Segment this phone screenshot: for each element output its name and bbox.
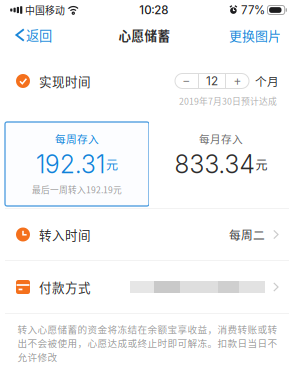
staticText: 中国移动 bbox=[25, 3, 65, 17]
staticText: 付款方式 bbox=[39, 278, 91, 296]
button[interactable]: 每月存入 bbox=[149, 122, 289, 206]
staticText: + bbox=[234, 73, 241, 89]
staticText: 10:28 bbox=[139, 3, 168, 17]
staticText: 833.34 bbox=[174, 149, 254, 179]
staticText: 192.31 bbox=[36, 149, 105, 179]
button[interactable]: 付款方式 bbox=[0, 261, 289, 313]
staticText: 2019年7月30日预计达成 bbox=[179, 95, 277, 107]
staticText: 返回 bbox=[26, 25, 52, 44]
staticText: 个月 bbox=[255, 72, 279, 89]
staticText: 元 bbox=[106, 156, 118, 173]
staticText: 转入时间 bbox=[39, 225, 91, 243]
button[interactable]: + bbox=[226, 73, 249, 88]
staticText: 最后一周转入192.19元 bbox=[32, 183, 122, 196]
button[interactable]: 每周存入 bbox=[5, 122, 149, 206]
button[interactable]: 返回 bbox=[0, 22, 62, 48]
staticText: 每月存入 bbox=[199, 131, 243, 146]
staticText: 转入心愿储蓄的资金将冻结在余额宝享收益，消费转账或转出不会被使用，心愿达成或终止… bbox=[17, 322, 277, 364]
staticText: 实现时间 bbox=[39, 72, 91, 90]
button[interactable]: − bbox=[175, 73, 198, 88]
staticText: 77% bbox=[241, 3, 265, 17]
staticText: − bbox=[183, 73, 190, 89]
staticText: 心愿储蓄 bbox=[118, 26, 170, 44]
button[interactable]: 更换图片 bbox=[221, 22, 289, 48]
staticText: 12 bbox=[206, 74, 218, 88]
button[interactable]: 转入时间 bbox=[0, 209, 289, 260]
staticText: 每周存入 bbox=[55, 131, 99, 146]
staticText: 更换图片 bbox=[229, 26, 281, 44]
staticText: 元 bbox=[255, 156, 267, 173]
staticText: 每周二 bbox=[229, 226, 265, 243]
